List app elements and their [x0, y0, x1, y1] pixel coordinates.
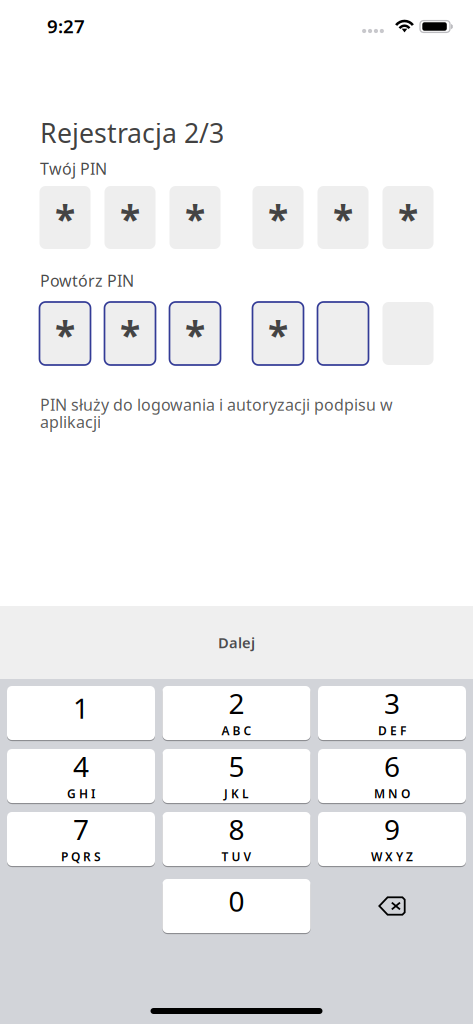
button[interactable]: 7: [7, 812, 155, 866]
staticText: 9:27: [47, 14, 85, 38]
button[interactable]: 4: [7, 749, 155, 803]
staticText: *: [55, 194, 75, 243]
staticText: 0: [228, 882, 244, 920]
staticText: 5: [228, 747, 244, 785]
staticText: *: [268, 310, 288, 359]
button[interactable]: PIN digit entered: [104, 186, 155, 249]
button[interactable]: 9: [318, 812, 466, 866]
staticText: Dalej: [218, 633, 255, 652]
staticText: Twój PIN: [40, 158, 107, 179]
staticText: *: [398, 194, 418, 243]
staticText: *: [120, 194, 140, 243]
button[interactable]: PIN digit entered: [39, 302, 90, 365]
staticText: *: [185, 310, 205, 359]
staticText: M N O: [374, 786, 410, 801]
staticText: *: [55, 310, 75, 359]
staticText: Rejestracja 2/3: [40, 115, 224, 150]
button[interactable]: 1: [7, 686, 155, 740]
staticText: W X Y Z: [371, 849, 413, 864]
button[interactable]: 6: [318, 749, 466, 803]
staticText: 6: [384, 747, 400, 785]
button[interactable]: PIN digit empty: [317, 302, 368, 365]
button[interactable]: PIN digit entered: [382, 186, 433, 249]
button[interactable]: 0: [162, 879, 310, 933]
button[interactable]: PIN digit entered: [169, 302, 220, 365]
staticText: D E F: [378, 723, 406, 738]
staticText: *: [185, 194, 205, 243]
button[interactable]: PIN digit entered: [169, 186, 220, 249]
staticText: 2: [228, 684, 244, 722]
staticText: *: [268, 194, 288, 243]
staticText: 1: [73, 689, 89, 727]
button[interactable]: Dalej: [194, 622, 279, 663]
button[interactable]: 2: [162, 686, 310, 740]
button[interactable]: PIN digit entered: [39, 186, 90, 249]
staticText: aplikacji: [40, 411, 101, 432]
button[interactable]: PIN digit entered: [104, 302, 155, 365]
staticText: *: [333, 194, 353, 243]
button[interactable]: PIN digit entered: [252, 186, 303, 249]
staticText: G H I: [67, 786, 95, 801]
button[interactable]: 8: [162, 812, 310, 866]
staticText: 9: [384, 810, 400, 848]
button[interactable]: PIN digit entered: [317, 186, 368, 249]
button[interactable]: 3: [318, 686, 466, 740]
staticText: P Q R S: [61, 849, 101, 864]
button[interactable]: Delete: [318, 879, 466, 933]
button[interactable]: 5: [162, 749, 310, 803]
staticText: PIN służy do logowania i autoryzacji pod…: [40, 394, 393, 415]
staticText: *: [120, 310, 140, 359]
button[interactable]: PIN digit entered: [252, 302, 303, 365]
staticText: Powtórz PIN: [40, 270, 134, 291]
staticText: J K L: [224, 786, 249, 801]
staticText: 3: [384, 684, 400, 722]
staticText: 8: [228, 810, 244, 848]
staticText: A B C: [221, 723, 251, 738]
staticText: 7: [73, 810, 89, 848]
staticText: 4: [73, 747, 89, 785]
staticText: T U V: [221, 849, 251, 864]
